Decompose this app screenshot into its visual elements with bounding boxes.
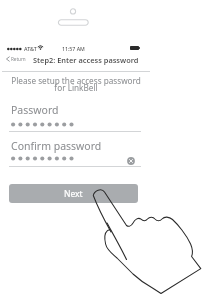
button[interactable]: Next <box>9 184 138 203</box>
staticText: Confirm password <box>11 139 102 153</box>
button[interactable]: Return <box>5 55 27 63</box>
staticText: Please setup the access password for Lin… <box>2 75 150 94</box>
staticText: Step2: Enter access password <box>33 55 139 65</box>
button[interactable]: Clear confirm password <box>127 157 135 165</box>
staticText: 11:57 AM <box>62 45 85 52</box>
staticText: Next <box>64 188 83 200</box>
staticText: Password <box>11 103 59 117</box>
staticText: Return <box>11 56 26 62</box>
staticText: AT&T <box>24 45 37 52</box>
